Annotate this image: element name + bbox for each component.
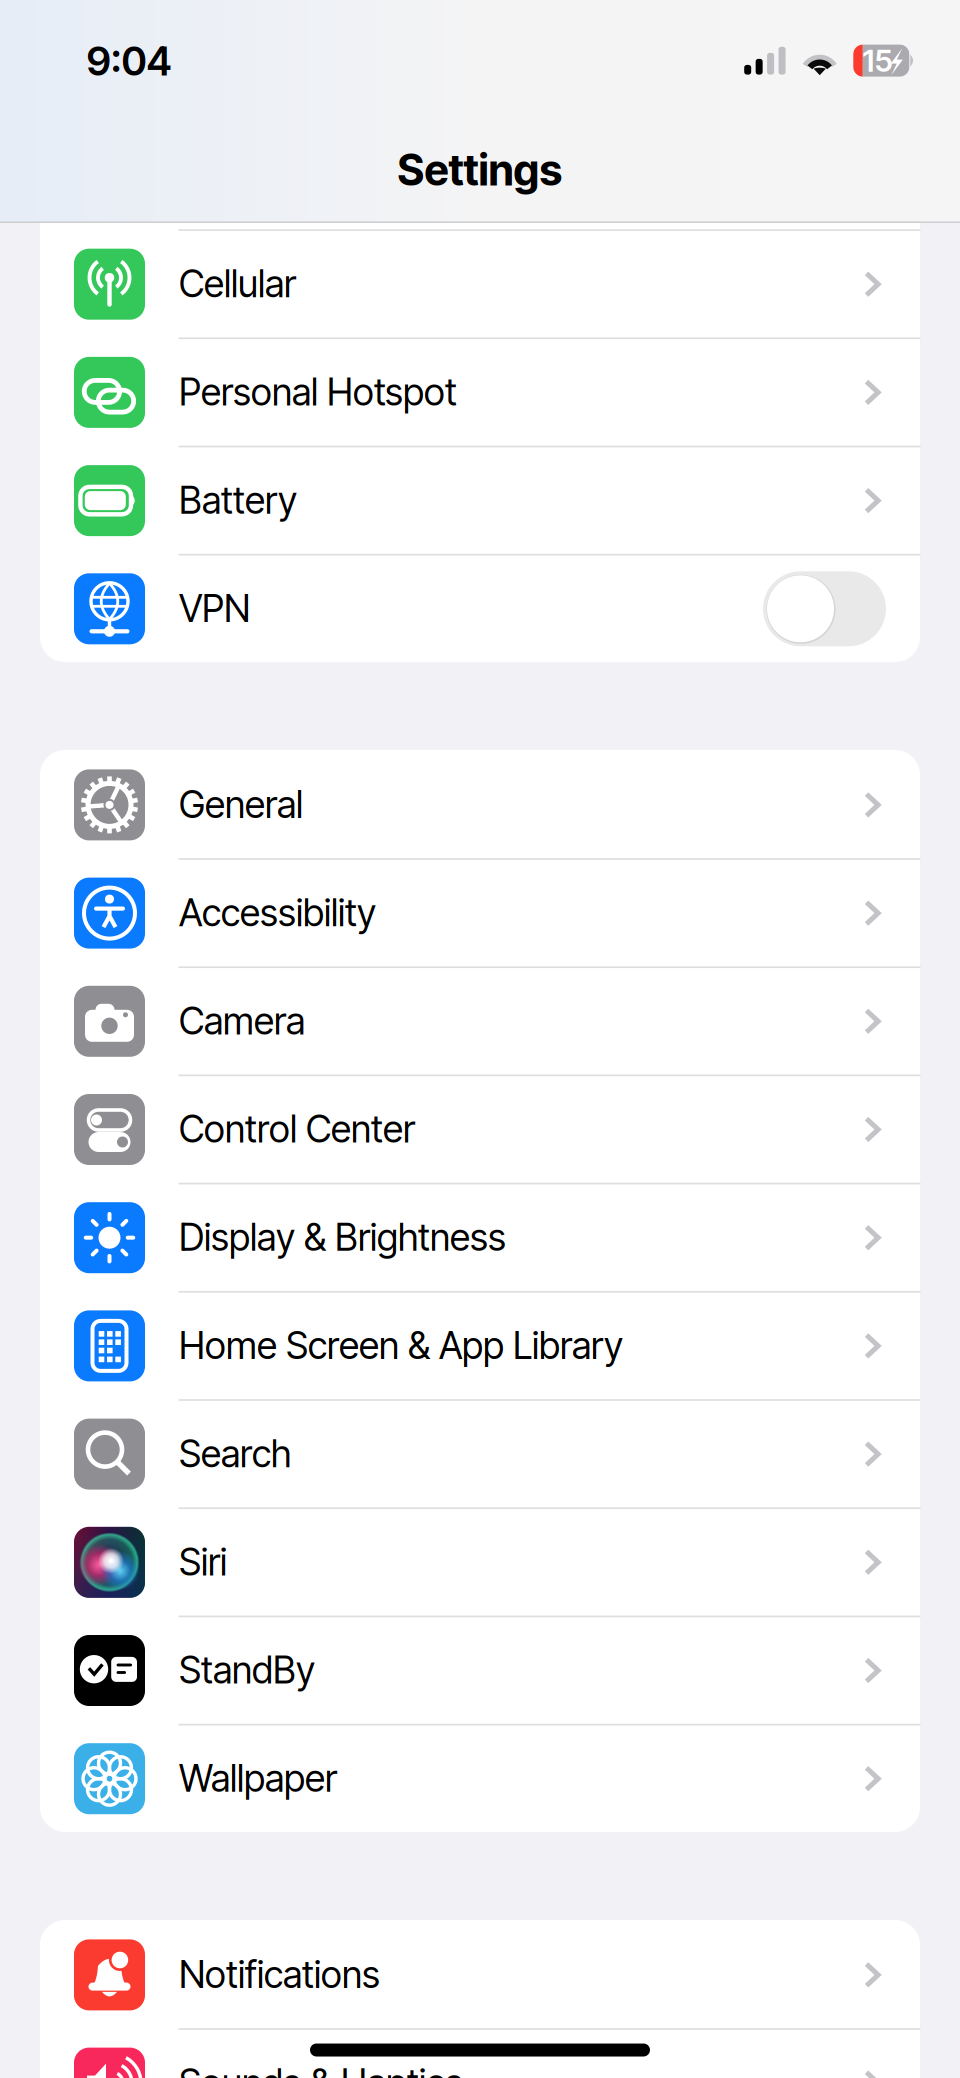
staticText: Display & Brightness: [179, 1215, 506, 1260]
staticText: VPN: [179, 586, 250, 631]
staticText: Control Center: [179, 1106, 415, 1152]
button[interactable]: StandBy: [0, 0, 960, 2078]
button[interactable]: Sounds & Haptics: [0, 0, 960, 2078]
button[interactable]: General: [0, 0, 960, 2078]
staticText: Siri: [179, 1539, 227, 1584]
button[interactable]: Control Center: [0, 0, 960, 2078]
staticText: Battery: [179, 477, 297, 523]
button[interactable]: VPN: [0, 0, 960, 2078]
button[interactable]: Personal Hotspot: [0, 0, 960, 2078]
button[interactable]: Battery: [0, 0, 960, 2078]
button[interactable]: Display & Brightness: [0, 0, 960, 2078]
staticText: 9:04: [86, 37, 171, 85]
staticText: Settings: [397, 144, 562, 196]
staticText: StandBy: [179, 1647, 315, 1693]
button[interactable]: Camera: [0, 0, 960, 2078]
staticText: Accessibility: [179, 890, 376, 935]
button[interactable]: Home Screen & App Library: [0, 0, 960, 2078]
staticText: Wallpaper: [179, 1756, 337, 1801]
button[interactable]: Accessibility: [0, 0, 960, 2078]
staticText: General: [179, 782, 303, 827]
staticText: Personal Hotspot: [179, 369, 457, 414]
staticText: Search: [179, 1431, 291, 1476]
button[interactable]: Search: [0, 0, 960, 2078]
staticText: Cellular: [179, 261, 296, 306]
staticText: Camera: [179, 998, 305, 1043]
button[interactable]: Siri: [0, 0, 960, 2078]
staticText: Sounds & Haptics: [179, 2060, 463, 2078]
button[interactable]: Wallpaper: [0, 0, 960, 2078]
button[interactable]: Notifications: [0, 0, 960, 2078]
staticText: 15: [862, 42, 892, 79]
button[interactable]: Cellular: [0, 0, 960, 2078]
staticText: Notifications: [179, 1952, 380, 1997]
staticText: Home Screen & App Library: [179, 1323, 623, 1368]
